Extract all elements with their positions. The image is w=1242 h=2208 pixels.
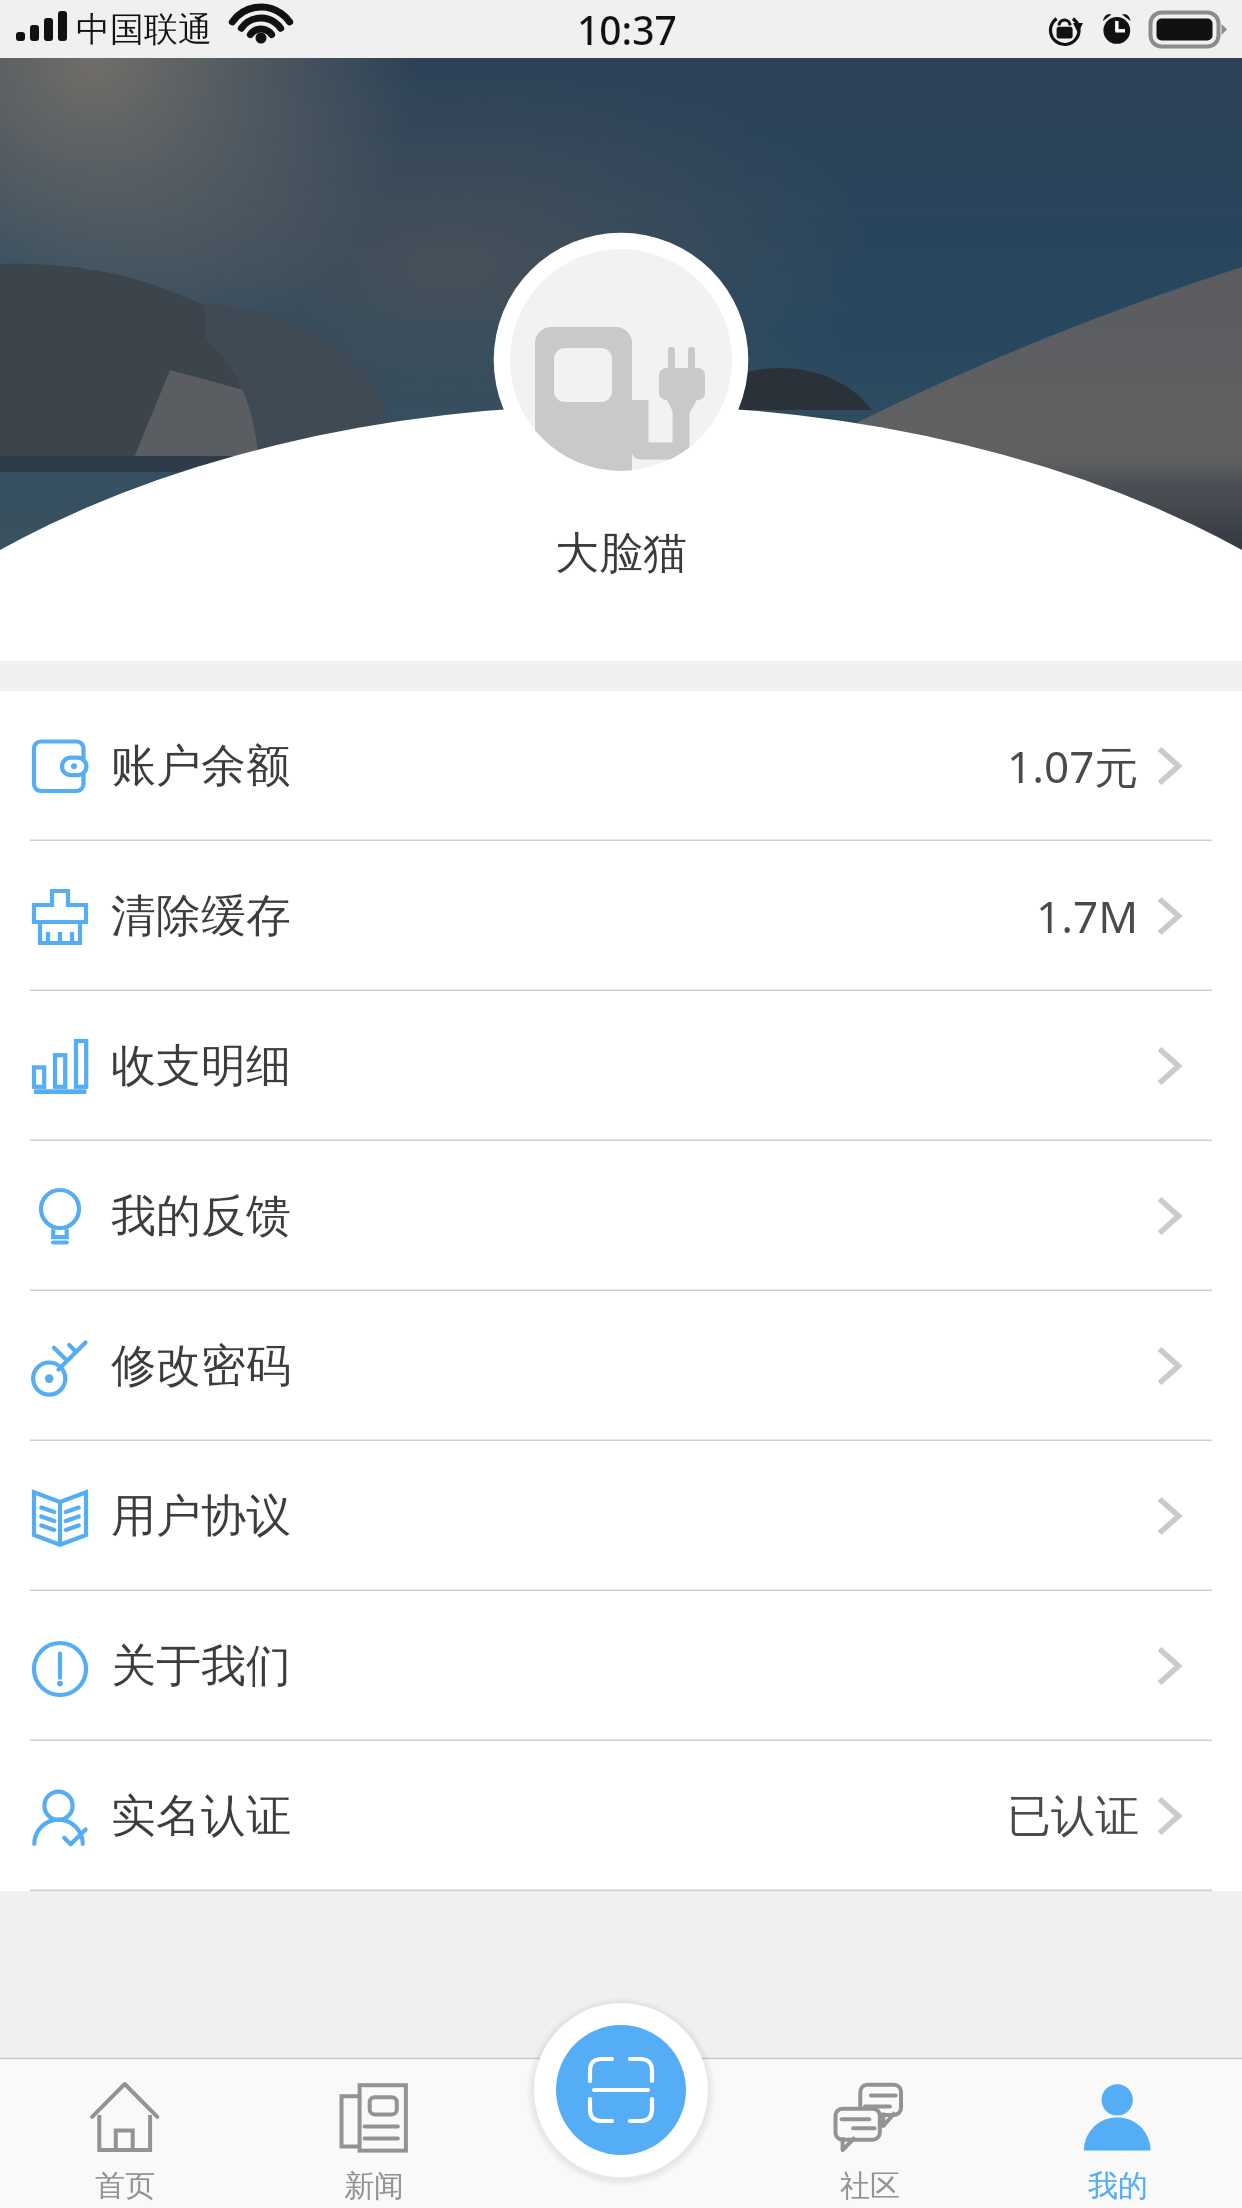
staticText: 我的反馈 xyxy=(111,1188,291,1245)
button[interactable]: 我的 xyxy=(994,2058,1242,2208)
button[interactable]: 关于我们 xyxy=(0,1591,1242,1741)
button[interactable]: Scan xyxy=(534,2003,708,2177)
staticText: 中国联通 xyxy=(76,8,212,51)
staticText: 清除缓存 xyxy=(111,888,291,945)
button[interactable]: 清除缓存 xyxy=(0,841,1242,991)
button[interactable]: 收支明细 xyxy=(0,991,1242,1141)
staticText: 大脸猫 xyxy=(555,526,687,581)
staticText: 1.7M xyxy=(1036,886,1139,946)
button[interactable]: 用户协议 xyxy=(0,1441,1242,1591)
staticText: 实名认证 xyxy=(111,1788,291,1845)
button[interactable]: 新闻 xyxy=(249,2058,498,2208)
staticText: 10:37 xyxy=(577,3,677,56)
button[interactable]: 账户余额 xyxy=(0,691,1242,841)
button[interactable]: 修改密码 xyxy=(0,1291,1242,1441)
staticText: 首页 xyxy=(95,2167,155,2205)
button[interactable]: 首页 xyxy=(0,2058,249,2208)
button[interactable]: 社区 xyxy=(746,2058,994,2208)
staticText: 关于我们 xyxy=(111,1638,291,1695)
staticText: 账户余额 xyxy=(111,738,291,795)
staticText: 1.07元 xyxy=(1007,736,1139,796)
staticText: 社区 xyxy=(840,2167,900,2205)
button[interactable]: 实名认证 xyxy=(0,1741,1242,1891)
staticText: 用户协议 xyxy=(111,1488,291,1545)
button[interactable]: 我的反馈 xyxy=(0,1141,1242,1291)
staticText: 已认证 xyxy=(1007,1789,1139,1844)
staticText: 收支明细 xyxy=(111,1038,291,1095)
staticText: 修改密码 xyxy=(111,1338,291,1395)
staticText: 新闻 xyxy=(344,2167,404,2205)
staticText: 我的 xyxy=(1088,2167,1148,2205)
